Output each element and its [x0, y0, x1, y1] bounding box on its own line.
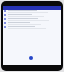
button[interactable] — [3, 18, 61, 22]
button[interactable] — [3, 26, 61, 30]
button[interactable]: Compose — [29, 56, 33, 60]
button[interactable] — [3, 22, 61, 26]
button[interactable] — [3, 10, 61, 14]
button[interactable] — [3, 14, 61, 18]
